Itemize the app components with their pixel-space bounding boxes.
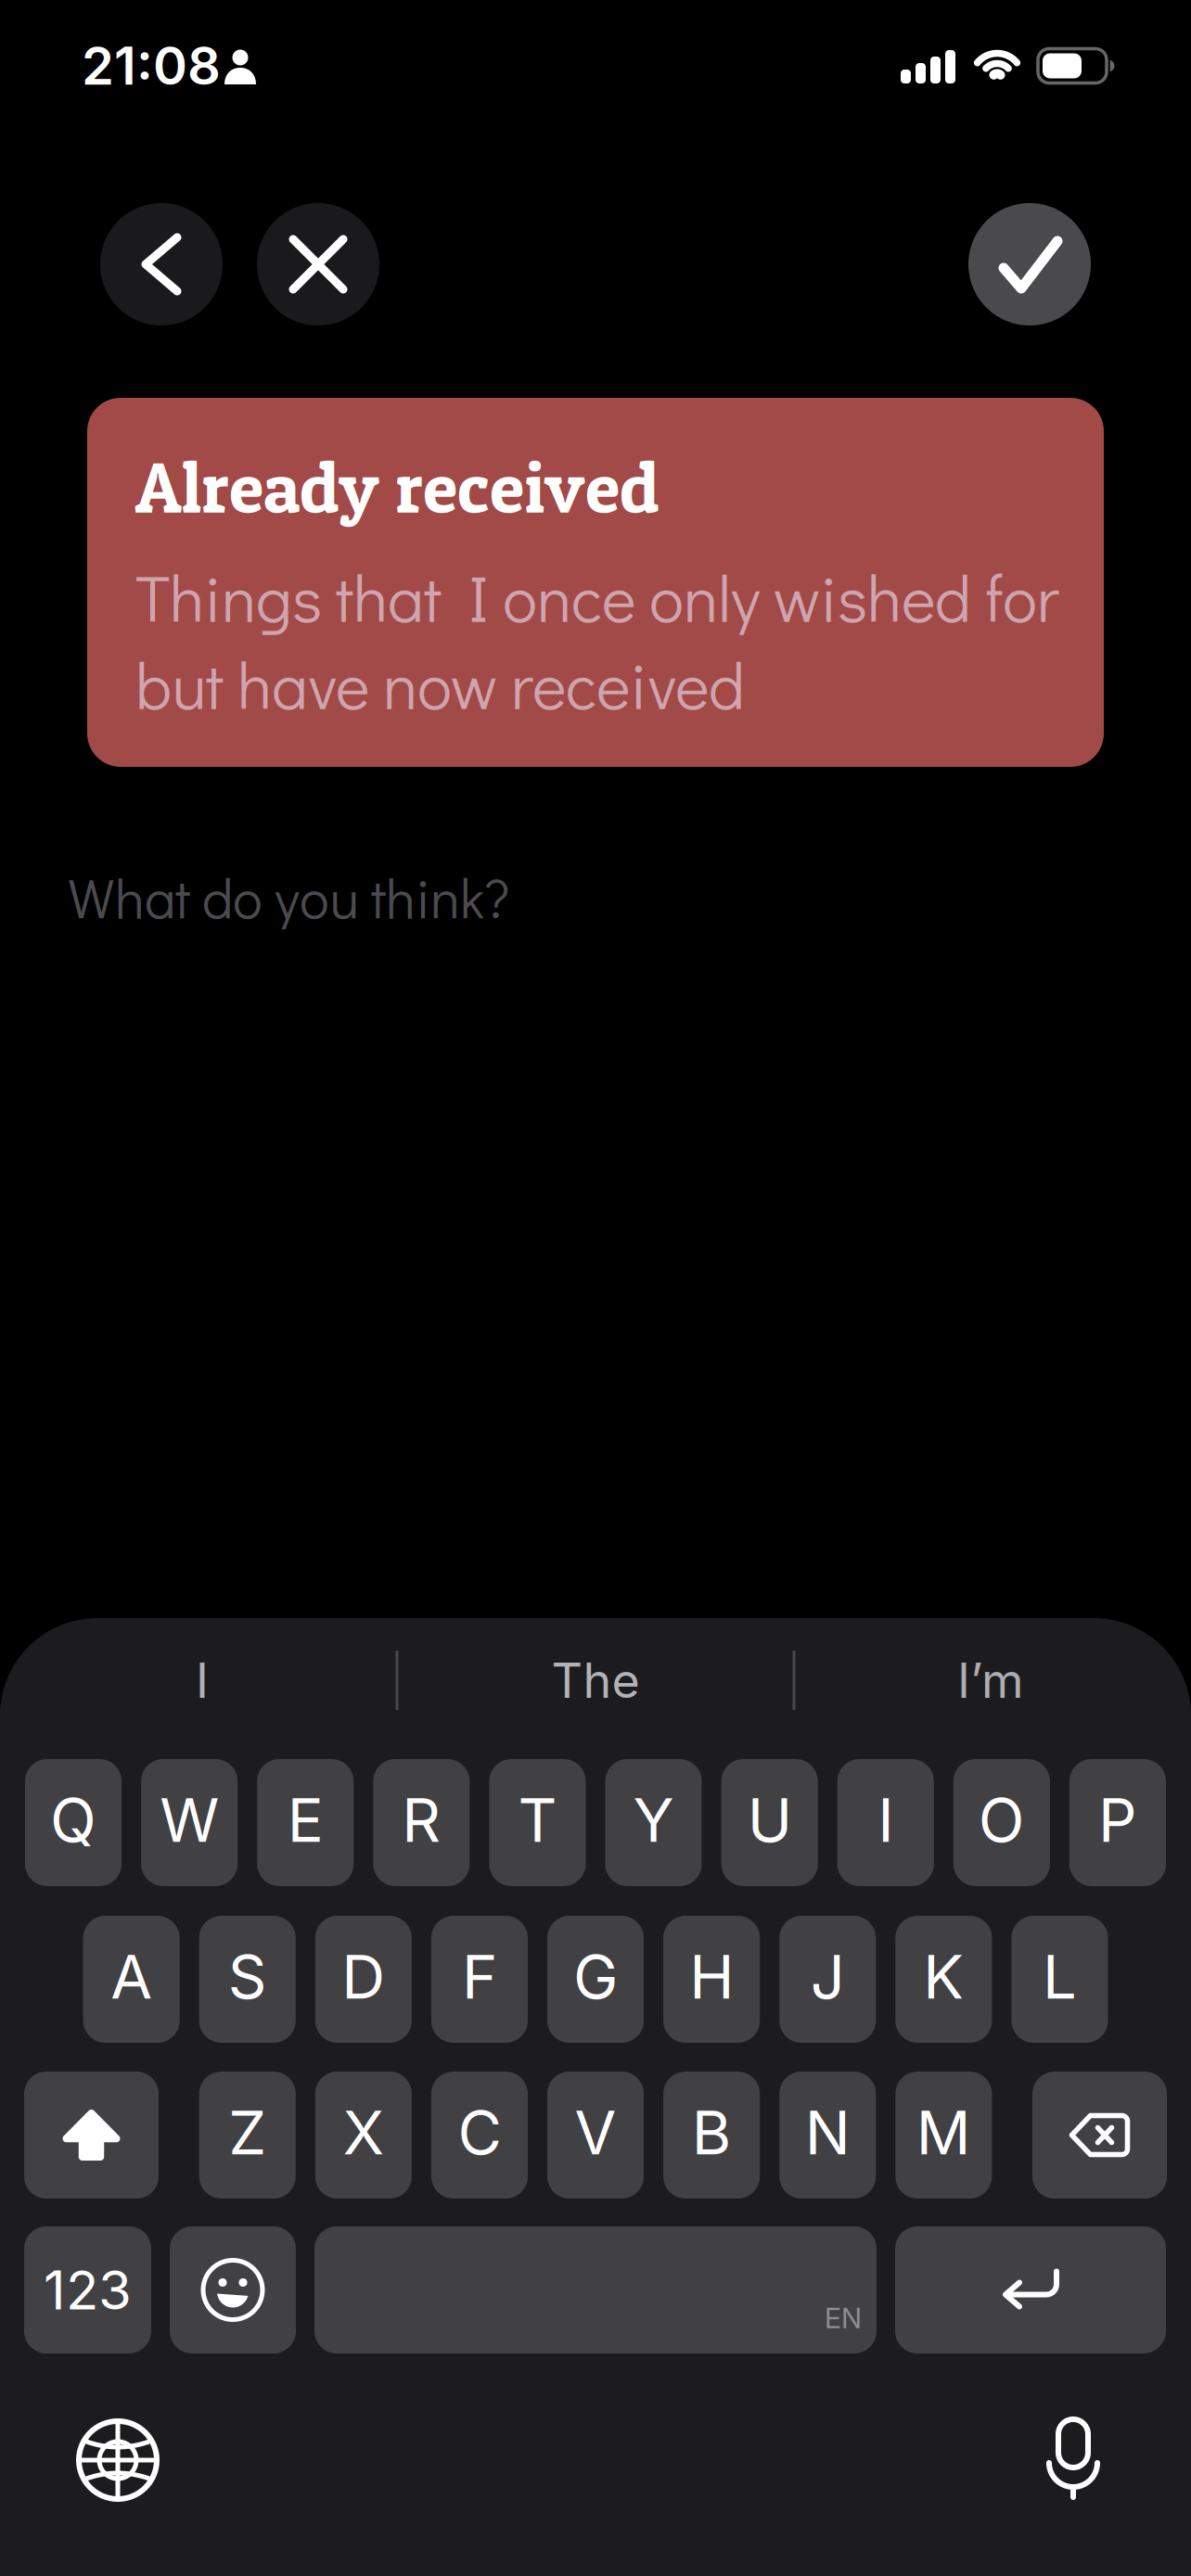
staticText: 123 xyxy=(44,2257,132,2322)
staticText: W xyxy=(160,1783,219,1856)
staticText: X xyxy=(343,2096,384,2169)
staticText: G xyxy=(573,1940,618,2013)
button[interactable]: T xyxy=(489,1759,586,1886)
button[interactable]: Next keyboard xyxy=(67,2409,169,2511)
button[interactable]: F xyxy=(431,1916,528,2043)
button[interactable]: U xyxy=(721,1759,818,1886)
staticText: Things that I once only wished for but h… xyxy=(135,555,1059,726)
button[interactable]: Back xyxy=(100,203,223,325)
button[interactable]: M xyxy=(895,2072,992,2199)
button[interactable]: Space xyxy=(314,2226,877,2353)
button[interactable]: Q xyxy=(25,1759,122,1886)
staticText: A xyxy=(110,1940,152,2013)
staticText: What do you think? xyxy=(68,861,509,933)
button[interactable]: N xyxy=(779,2072,876,2199)
button[interactable]: P xyxy=(1069,1759,1166,1886)
staticText: Already received xyxy=(135,443,660,530)
button[interactable]: S xyxy=(199,1916,296,2043)
staticText: L xyxy=(1042,1940,1077,2013)
button[interactable]: W xyxy=(141,1759,238,1886)
staticText: EN xyxy=(825,2301,862,2335)
button[interactable]: D xyxy=(315,1916,412,2043)
button[interactable]: A xyxy=(83,1916,180,2043)
staticText: E xyxy=(287,1783,324,1856)
button[interactable]: X xyxy=(315,2072,412,2199)
staticText: J xyxy=(810,1940,845,2013)
button[interactable]: Emoji xyxy=(170,2226,296,2353)
staticText: R xyxy=(402,1783,441,1856)
staticText: N xyxy=(805,2096,850,2169)
button[interactable]: Return xyxy=(895,2226,1166,2353)
staticText: H xyxy=(689,1940,734,2013)
button[interactable]: Y xyxy=(605,1759,702,1886)
staticText: M xyxy=(916,2096,971,2169)
button[interactable]: 123 xyxy=(24,2226,151,2353)
staticText: K xyxy=(923,1940,964,2013)
button[interactable]: H xyxy=(663,1916,760,2043)
button[interactable]: Delete xyxy=(1032,2072,1167,2199)
staticText: F xyxy=(462,1940,497,2013)
staticText: Z xyxy=(228,2096,266,2169)
staticText: O xyxy=(978,1783,1025,1856)
staticText: Y xyxy=(633,1783,674,1856)
staticText: I xyxy=(878,1783,893,1856)
button[interactable]: E xyxy=(257,1759,354,1886)
staticText: Q xyxy=(50,1783,96,1856)
staticText: D xyxy=(342,1940,385,2013)
button[interactable]: The xyxy=(419,1639,772,1722)
button[interactable]: G xyxy=(547,1916,644,2043)
staticText: The xyxy=(551,1651,640,1709)
staticText: U xyxy=(747,1783,792,1856)
button[interactable]: R xyxy=(373,1759,470,1886)
staticText: I’m xyxy=(957,1651,1024,1709)
staticText: P xyxy=(1098,1783,1137,1856)
button[interactable]: Dictation xyxy=(1022,2406,1124,2508)
button[interactable]: Shift xyxy=(24,2072,159,2199)
staticText: T xyxy=(518,1783,557,1856)
button[interactable]: K xyxy=(895,1916,992,2043)
button[interactable]: C xyxy=(431,2072,528,2199)
button[interactable]: Done xyxy=(968,203,1091,325)
button[interactable]: I’m xyxy=(814,1639,1167,1722)
button[interactable]: O xyxy=(953,1759,1050,1886)
staticText: S xyxy=(228,1940,267,2013)
button[interactable]: I xyxy=(26,1639,378,1722)
button[interactable]: V xyxy=(547,2072,644,2199)
staticText: C xyxy=(458,2096,501,2169)
button[interactable]: L xyxy=(1011,1916,1108,2043)
button[interactable]: B xyxy=(663,2072,760,2199)
staticText: 21:08 xyxy=(82,34,221,97)
staticText: I xyxy=(196,1651,209,1709)
staticText: B xyxy=(692,2096,731,2169)
button[interactable]: I xyxy=(837,1759,934,1886)
button[interactable]: Z xyxy=(199,2072,296,2199)
staticText: V xyxy=(575,2096,616,2169)
button[interactable]: J xyxy=(779,1916,876,2043)
button[interactable]: Close xyxy=(257,203,379,325)
